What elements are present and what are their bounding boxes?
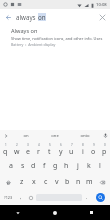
staticText: y xyxy=(59,147,63,157)
button[interactable]: Voice input xyxy=(100,130,110,141)
button[interactable]: Shift xyxy=(0,174,16,190)
staticText: 1 xyxy=(5,143,7,147)
staticText: 6 xyxy=(60,143,62,147)
staticText: z xyxy=(20,177,24,187)
button[interactable]: 6 xyxy=(55,141,66,158)
button[interactable]: Always on xyxy=(0,25,110,50)
button[interactable]: z xyxy=(16,174,28,190)
staticText: 2 xyxy=(16,143,18,147)
staticText: onto xyxy=(80,133,90,139)
staticText: w xyxy=(14,147,20,157)
staticText: t xyxy=(48,147,51,157)
staticText: ?123 xyxy=(4,195,13,200)
staticText: 0 xyxy=(104,143,106,147)
staticText: r xyxy=(37,147,40,157)
staticText: c xyxy=(44,177,48,187)
button[interactable]: a xyxy=(5,158,17,174)
staticText: g xyxy=(53,161,58,171)
button[interactable]: 2 xyxy=(11,141,22,158)
staticText: n xyxy=(76,177,81,187)
button[interactable]: Backspace xyxy=(95,174,110,190)
staticText: 10:08 xyxy=(96,2,107,8)
staticText: e xyxy=(26,147,30,157)
button[interactable]: v xyxy=(51,174,62,190)
staticText: 3 xyxy=(27,143,29,147)
button[interactable]: one xyxy=(40,130,70,141)
button[interactable]: onto xyxy=(70,130,100,141)
staticText: Battery › Ambient display xyxy=(11,42,56,47)
button[interactable]: n xyxy=(73,174,84,190)
staticText: on xyxy=(23,133,29,139)
button[interactable]: Search xyxy=(92,190,109,205)
staticText: p xyxy=(102,147,107,157)
button[interactable]: Back xyxy=(0,205,36,220)
button[interactable]: 3 xyxy=(22,141,33,158)
staticText: m xyxy=(86,177,93,187)
button[interactable]: k xyxy=(83,158,94,174)
staticText: s xyxy=(21,161,25,171)
button[interactable]: g xyxy=(50,158,61,174)
staticText: b xyxy=(65,177,70,187)
staticText: . xyxy=(86,194,88,201)
staticText: u xyxy=(69,147,74,157)
staticText: i xyxy=(82,147,84,157)
staticText: h xyxy=(64,161,69,171)
button[interactable]: c xyxy=(40,174,51,190)
button[interactable]: j xyxy=(72,158,83,174)
button[interactable]: 0 xyxy=(99,141,110,158)
button[interactable]: Back xyxy=(0,9,16,25)
staticText: 7 xyxy=(71,143,73,147)
staticText: f xyxy=(43,161,46,171)
staticText: v xyxy=(55,177,59,187)
staticText: a xyxy=(9,161,13,171)
staticText: 5 xyxy=(49,143,51,147)
button[interactable]: x xyxy=(28,174,40,190)
staticText: always xyxy=(16,13,38,21)
button[interactable]: 7 xyxy=(66,141,77,158)
button[interactable]: Emoji xyxy=(26,190,36,205)
button[interactable]: Recent apps xyxy=(73,205,110,220)
button[interactable]: 8 xyxy=(77,141,88,158)
staticText: j xyxy=(77,161,79,171)
button[interactable]: 1 xyxy=(0,141,11,158)
button[interactable]: Home xyxy=(36,205,73,220)
button[interactable]: 5 xyxy=(44,141,55,158)
staticText: one xyxy=(51,133,59,139)
button[interactable]: Comma xyxy=(16,190,26,205)
staticText: d xyxy=(31,161,36,171)
staticText: on xyxy=(38,13,46,21)
button[interactable]: f xyxy=(39,158,50,174)
staticText: 4 xyxy=(38,143,40,147)
button[interactable]: on xyxy=(11,130,40,141)
staticText: x xyxy=(32,177,36,187)
button[interactable]: Clear search xyxy=(94,9,110,25)
button[interactable]: h xyxy=(61,158,72,174)
button[interactable]: 4 xyxy=(33,141,44,158)
button[interactable]: b xyxy=(62,174,73,190)
button[interactable]: d xyxy=(28,158,39,174)
button[interactable]: 9 xyxy=(88,141,99,158)
staticText: q xyxy=(3,147,8,157)
button[interactable]: Period xyxy=(82,190,92,205)
staticText: 9 xyxy=(93,143,95,147)
staticText: 8 xyxy=(82,143,84,147)
button[interactable]: ?123 xyxy=(1,190,16,205)
button[interactable]: l xyxy=(94,158,105,174)
staticText: o xyxy=(91,147,96,157)
staticText: l xyxy=(99,161,101,171)
staticText: Show time, notification icons, and other… xyxy=(11,36,104,41)
staticText: , xyxy=(20,194,22,201)
button[interactable]: m xyxy=(84,174,95,190)
staticText: Always on xyxy=(11,27,38,35)
button[interactable]: s xyxy=(17,158,28,174)
staticText: k xyxy=(87,161,91,171)
button[interactable]: More suggestions xyxy=(0,130,11,141)
